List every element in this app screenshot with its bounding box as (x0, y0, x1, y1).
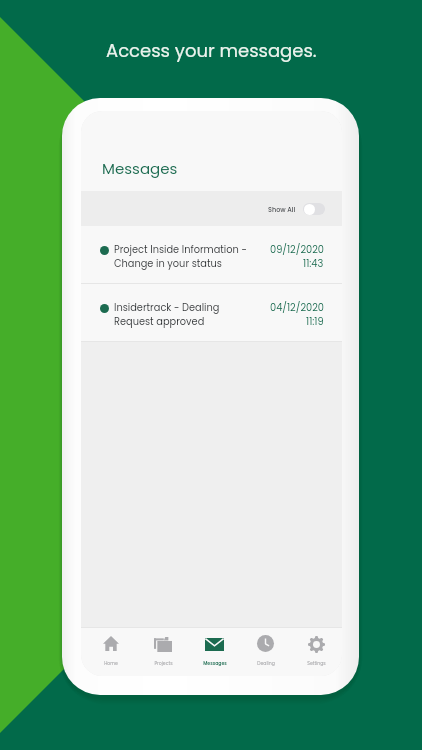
staticText: 11:19 (306, 315, 324, 329)
button[interactable]: Insidertrack - Dealing (81, 284, 342, 341)
button[interactable]: Projects (137, 628, 189, 676)
staticText: 11:43 (303, 257, 324, 271)
staticText: Request approved (114, 315, 205, 329)
staticText: Insidertrack - Dealing (114, 301, 220, 315)
staticText: Access your messages. (106, 38, 317, 63)
staticText: Projects (154, 660, 173, 666)
button[interactable]: Messages (189, 628, 240, 676)
button[interactable]: Home (85, 628, 137, 676)
staticText: Dealing (257, 660, 275, 666)
staticText: 04/12/2020 (270, 301, 324, 315)
staticText: 09/12/2020 (270, 243, 324, 257)
staticText: Home (104, 660, 118, 666)
button[interactable]: Settings (291, 628, 342, 676)
button[interactable]: Dealing (240, 628, 291, 676)
staticText: Messages (203, 660, 227, 666)
staticText: Show All (268, 205, 296, 214)
staticText: Project Inside Information - (114, 243, 247, 257)
button[interactable]: Project Inside Information - (81, 226, 342, 283)
staticText: Change in your status (114, 257, 222, 271)
staticText: Settings (307, 660, 326, 666)
button[interactable]: Show All (81, 191, 342, 226)
staticText: Messages (102, 158, 178, 179)
